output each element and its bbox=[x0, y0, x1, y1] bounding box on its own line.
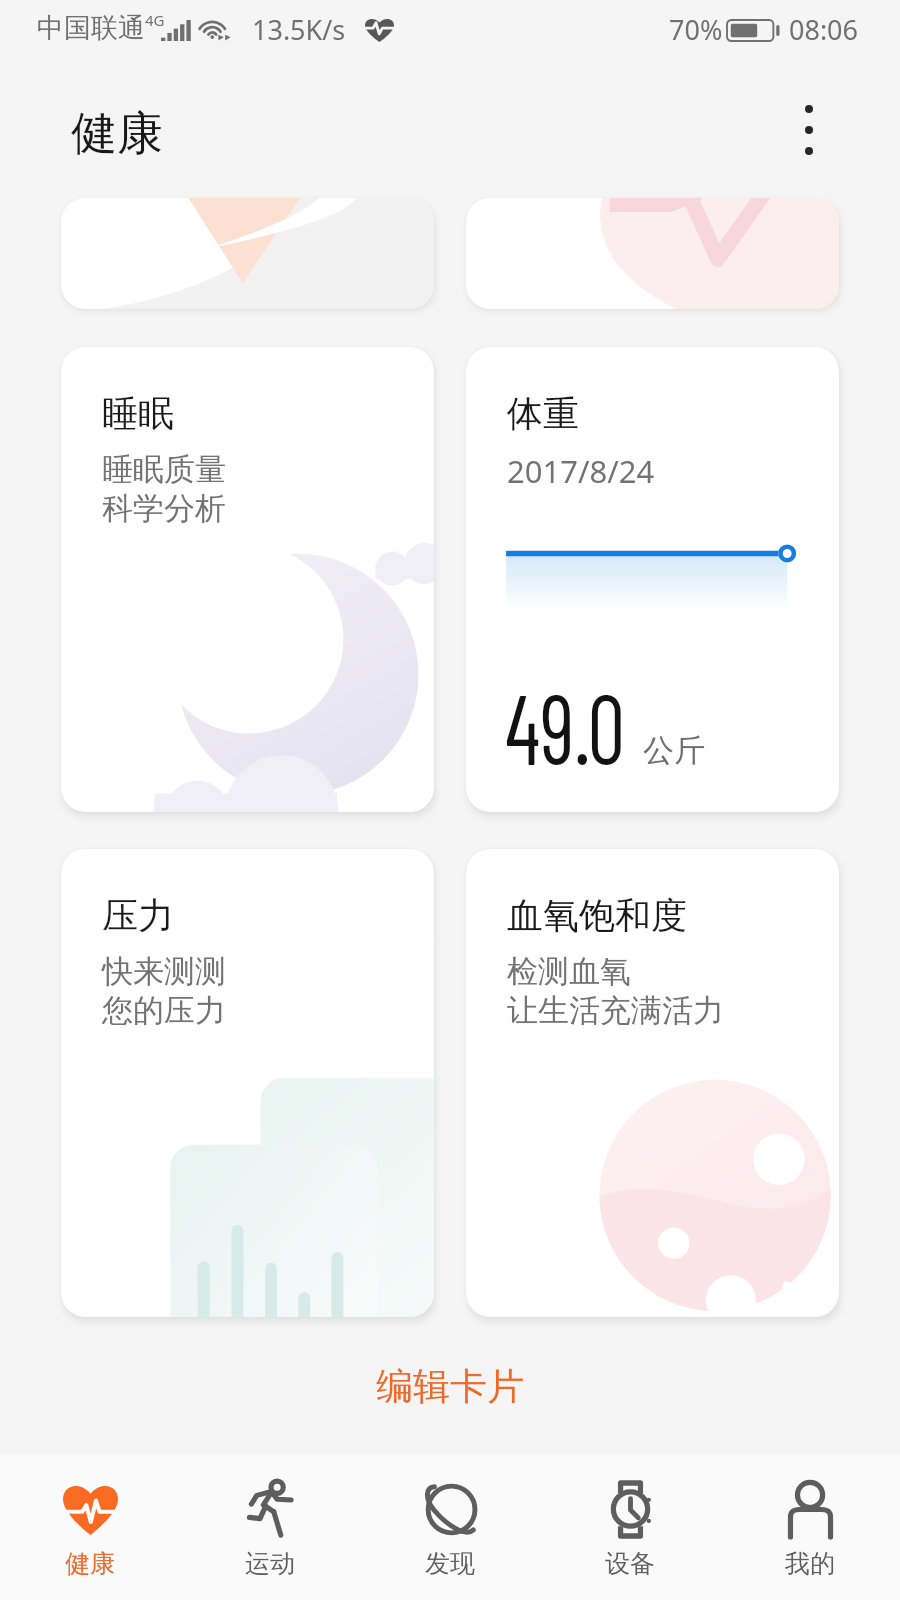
staticText: 13.5K/s bbox=[252, 11, 346, 48]
staticText: 压力 bbox=[102, 893, 174, 938]
staticText: 快来测测 bbox=[102, 952, 226, 991]
staticText: 公斤 bbox=[643, 731, 705, 770]
button[interactable]: More options bbox=[773, 94, 845, 166]
staticText: 设备 bbox=[605, 1548, 655, 1579]
button[interactable]: 我的 bbox=[720, 1455, 900, 1600]
button[interactable]: 压力 bbox=[61, 849, 434, 1317]
staticText: 4G bbox=[145, 10, 165, 30]
staticText: 中国联通 bbox=[37, 11, 145, 45]
staticText: 检测血氧 bbox=[507, 952, 631, 991]
button[interactable]: 运动 bbox=[180, 1455, 360, 1600]
staticText: 健康 bbox=[65, 1548, 115, 1579]
staticText: 体重 bbox=[507, 391, 579, 436]
staticText: 运动 bbox=[245, 1548, 295, 1579]
staticText: 健康 bbox=[71, 105, 163, 163]
button[interactable]: 编辑卡片 bbox=[346, 1349, 554, 1424]
staticText: 08:06 bbox=[789, 11, 859, 48]
button[interactable]: 发现 bbox=[360, 1455, 540, 1600]
staticText: 您的压力 bbox=[102, 991, 226, 1030]
button[interactable]: 设备 bbox=[540, 1455, 720, 1600]
staticText: 49.0 bbox=[505, 667, 625, 785]
staticText: 2017/8/24 bbox=[507, 450, 655, 492]
staticText: 科学分析 bbox=[102, 489, 226, 528]
staticText: 70% bbox=[669, 11, 723, 48]
button[interactable]: 体重 bbox=[466, 347, 839, 812]
staticText: 编辑卡片 bbox=[376, 1363, 524, 1410]
staticText: 睡眠质量 bbox=[102, 450, 226, 489]
button[interactable]: 健康 bbox=[0, 1455, 180, 1600]
button[interactable]: 血氧饱和度 bbox=[466, 849, 839, 1317]
staticText: 让生活充满活力 bbox=[507, 991, 724, 1030]
staticText: 血氧饱和度 bbox=[507, 893, 687, 938]
button[interactable] bbox=[61, 198, 434, 309]
staticText: 发现 bbox=[425, 1548, 475, 1579]
button[interactable] bbox=[466, 198, 839, 309]
button[interactable]: 睡眠 bbox=[61, 347, 434, 812]
staticText: 我的 bbox=[785, 1548, 835, 1579]
staticText: 睡眠 bbox=[102, 391, 174, 436]
